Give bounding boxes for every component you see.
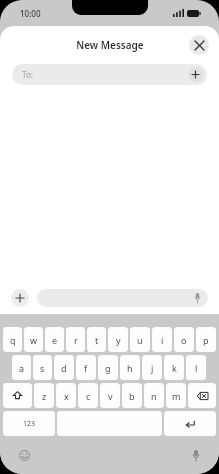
- button[interactable]: 123: [3, 411, 55, 436]
- staticText: New Message: [76, 38, 144, 52]
- staticText: w: [30, 334, 38, 346]
- staticText: e: [52, 334, 58, 346]
- staticText: n: [151, 390, 157, 402]
- button[interactable]: c: [78, 383, 98, 408]
- staticText: 10:00: [20, 8, 41, 19]
- staticText: g: [105, 362, 111, 374]
- staticText: y: [116, 334, 121, 346]
- staticText: t: [95, 334, 99, 346]
- button[interactable]: e: [45, 327, 64, 352]
- staticText: c: [86, 390, 91, 402]
- staticText: o: [181, 334, 187, 346]
- staticText: a: [19, 362, 25, 374]
- button[interactable]: Backspace: [188, 383, 216, 408]
- staticText: l: [195, 362, 198, 374]
- button[interactable]: h: [120, 355, 140, 380]
- button[interactable]: Voice input: [37, 289, 208, 307]
- button[interactable]: x: [56, 383, 76, 408]
- button[interactable]: p: [196, 327, 216, 352]
- button[interactable]: y: [108, 327, 128, 352]
- button[interactable]: To:: [12, 64, 207, 85]
- staticText: j: [151, 362, 154, 374]
- button[interactable]: j: [142, 355, 162, 380]
- button[interactable]: f: [76, 355, 96, 380]
- button[interactable]: g: [98, 355, 118, 380]
- button[interactable]: t: [87, 327, 106, 352]
- button[interactable]: Close: [189, 35, 209, 55]
- button[interactable]: o: [174, 327, 194, 352]
- staticText: k: [172, 362, 177, 374]
- button[interactable]: Add attachment: [11, 289, 29, 307]
- button[interactable]: r: [66, 327, 85, 352]
- staticText: p: [203, 334, 209, 346]
- button[interactable]: n: [144, 383, 164, 408]
- button[interactable]: a: [12, 355, 31, 380]
- button[interactable]: u: [130, 327, 150, 352]
- button[interactable]: m: [166, 383, 186, 408]
- button[interactable]: i: [152, 327, 172, 352]
- staticText: d: [61, 362, 67, 374]
- staticText: 123: [23, 419, 36, 429]
- button[interactable]: Emoji: [19, 450, 30, 461]
- button[interactable]: s: [33, 355, 52, 380]
- staticText: f: [84, 362, 88, 374]
- staticText: x: [64, 390, 69, 402]
- button[interactable]: d: [54, 355, 74, 380]
- button[interactable]: z: [34, 383, 54, 408]
- button[interactable]: Voice typing: [192, 450, 200, 461]
- button[interactable]: v: [100, 383, 120, 408]
- button[interactable]: k: [164, 355, 184, 380]
- staticText: u: [137, 334, 143, 346]
- staticText: b: [129, 390, 135, 402]
- staticText: v: [108, 390, 113, 402]
- button[interactable]: w: [24, 327, 43, 352]
- button[interactable]: b: [122, 383, 142, 408]
- staticText: m: [172, 390, 181, 402]
- staticText: r: [74, 334, 78, 346]
- button[interactable]: Enter: [164, 411, 216, 436]
- staticText: s: [40, 362, 45, 374]
- other: Voice input: [194, 293, 201, 303]
- button[interactable]: q: [3, 327, 22, 352]
- button[interactable]: l: [186, 355, 206, 380]
- staticText: To:: [22, 69, 33, 80]
- button[interactable]: Add recipient: [188, 67, 203, 82]
- staticText: i: [161, 334, 164, 346]
- staticText: q: [10, 334, 16, 346]
- staticText: z: [42, 390, 47, 402]
- button[interactable]: Shift: [3, 383, 32, 408]
- staticText: h: [127, 362, 133, 374]
